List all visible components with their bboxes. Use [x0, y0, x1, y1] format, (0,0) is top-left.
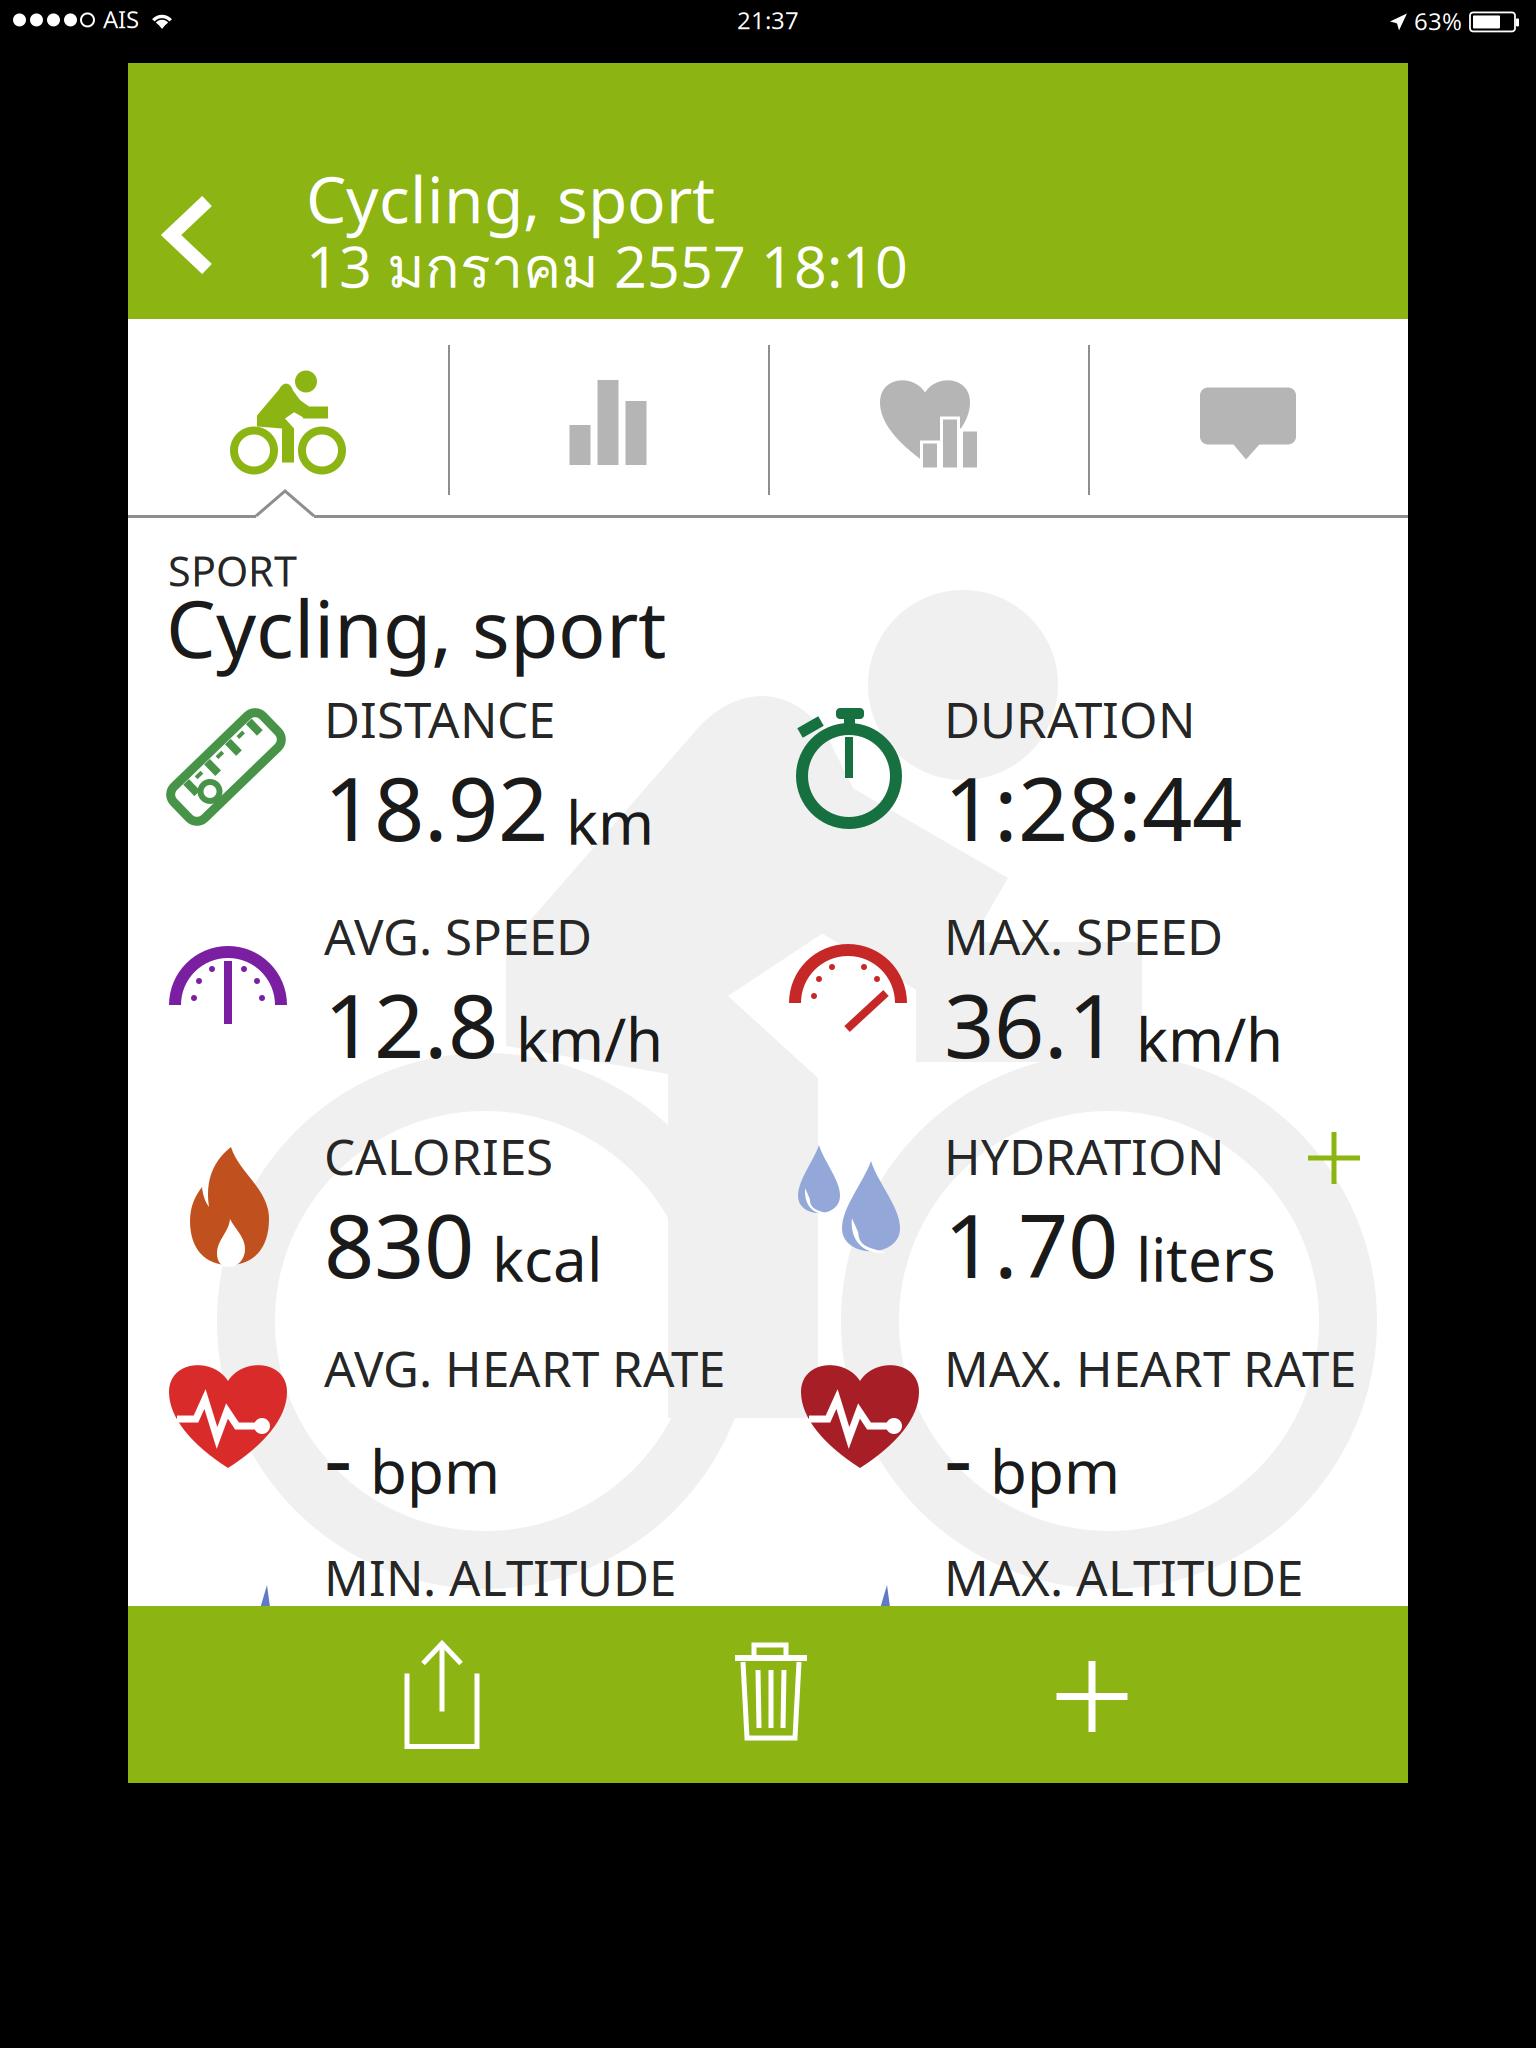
button[interactable]: Add [1017, 1608, 1167, 1785]
staticText: SPORT [168, 543, 297, 598]
staticText: CALORIES [324, 1123, 553, 1188]
button[interactable]: Activity [128, 319, 448, 518]
staticText: - [944, 1397, 972, 1514]
button[interactable]: Back [126, 155, 250, 315]
staticText: liters [1136, 1219, 1276, 1298]
staticText: kcal [492, 1219, 602, 1298]
staticText: AVG. HEART RATE [324, 1335, 725, 1400]
staticText: bpm [370, 1431, 500, 1510]
staticText: 63% [1414, 5, 1462, 37]
staticText: MAX. SPEED [944, 903, 1223, 968]
staticText: 21:37 [737, 4, 799, 36]
staticText: 830 [324, 1185, 474, 1302]
staticText: AVG. SPEED [324, 903, 592, 968]
button[interactable]: Heart rate [768, 319, 1088, 518]
button[interactable]: Share [367, 1607, 517, 1784]
staticText: 36.1 [944, 965, 1118, 1082]
staticText: 13 มกราคม 2557 18:10 [306, 223, 908, 312]
staticText: km/h [516, 999, 663, 1078]
staticText: HYDRATION [944, 1123, 1224, 1188]
staticText: MAX. ALTITUDE [944, 1544, 1303, 1609]
staticText: MIN. ALTITUDE [324, 1544, 676, 1609]
button[interactable]: Comments [1088, 319, 1408, 518]
button[interactable]: Charts [448, 319, 768, 518]
staticText: 1.70 [944, 1185, 1118, 1302]
staticText: Cycling, sport [166, 575, 666, 679]
staticText: MAX. HEART RATE [944, 1335, 1356, 1400]
button[interactable]: Delete [696, 1602, 846, 1779]
staticText: 18.92 [324, 748, 548, 865]
staticText: - [324, 1397, 352, 1514]
staticText: bpm [990, 1431, 1120, 1510]
staticText: DISTANCE [324, 686, 555, 751]
staticText: km [566, 782, 654, 861]
staticText: DURATION [944, 686, 1195, 751]
staticText: AIS [103, 3, 139, 35]
staticText: Cycling, sport [306, 156, 715, 241]
staticText: 1:28:44 [944, 748, 1242, 865]
staticText: km/h [1136, 999, 1283, 1078]
staticText: 12.8 [324, 965, 498, 1082]
